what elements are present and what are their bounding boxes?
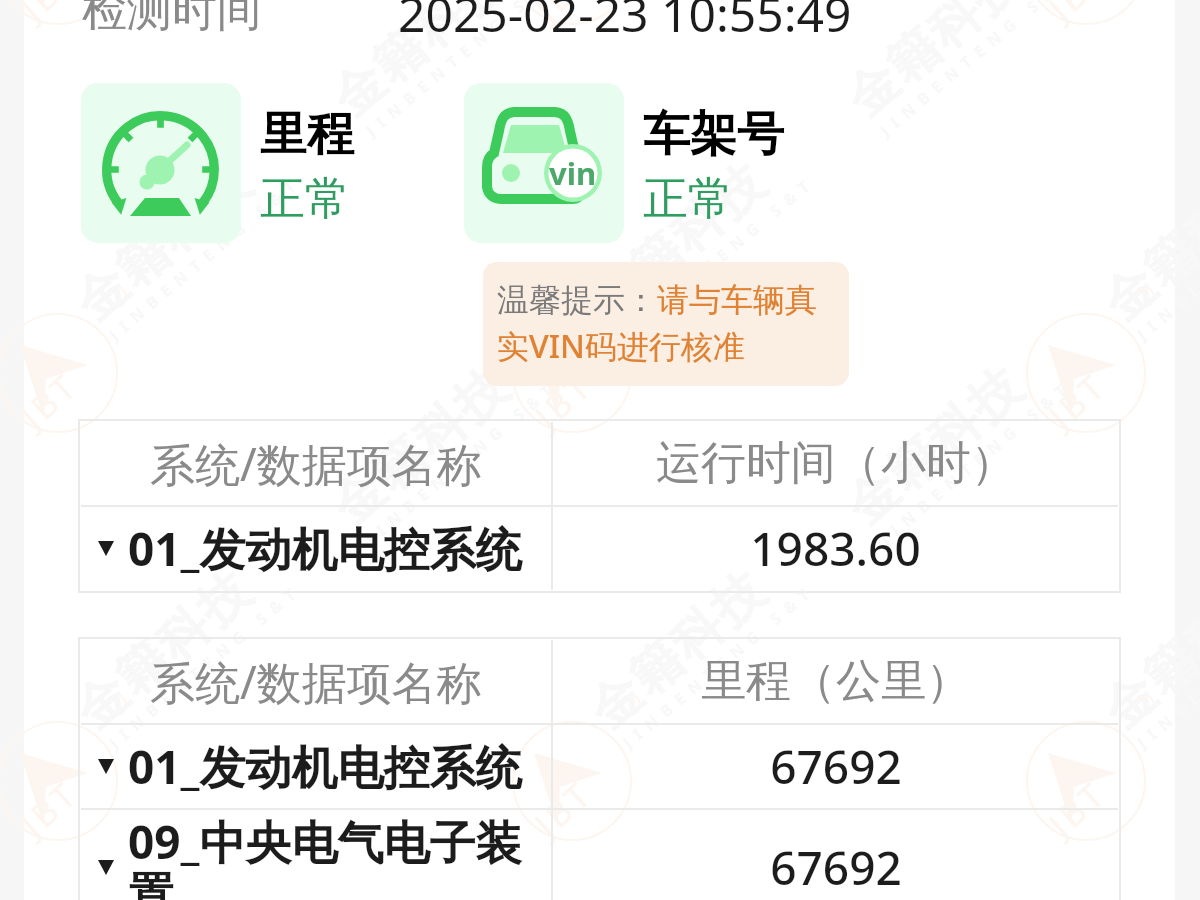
button[interactable]: 系统/数据项名称	[81, 422, 1118, 505]
staticText: 67692	[770, 836, 902, 899]
staticText: JINBENTENG S&T	[361, 374, 564, 549]
button[interactable]: 温馨提示：请与车辆真实VIN码进行核准	[483, 262, 849, 386]
staticText: JBT	[11, 0, 88, 30]
staticText: 金籍科技	[61, 151, 264, 335]
staticText: 金籍科技	[832, 355, 1035, 539]
staticText: JINBENTENG S&T	[361, 0, 564, 141]
staticText: 系统/数据项名称	[150, 433, 482, 494]
staticText: JINBENTENG S&T	[875, 374, 1078, 549]
button[interactable]: 里程	[81, 83, 241, 243]
staticText: 金籍科技	[575, 151, 778, 335]
staticText: JBT	[1039, 0, 1116, 30]
button[interactable]: 09_中央电气电子装置	[81, 810, 1118, 900]
staticText: 车架号	[643, 105, 784, 164]
staticText: 1983.60	[750, 517, 921, 580]
staticText: 系统/数据项名称	[150, 651, 482, 712]
staticText: JBT	[1039, 770, 1116, 846]
staticText: 运行时间（小时）	[656, 435, 1016, 492]
staticText: 温馨提示：请与车辆真实VIN码进行核准	[497, 280, 839, 368]
staticText: JINBENTENG S&T	[104, 170, 307, 345]
button[interactable]: 车架号	[464, 83, 624, 243]
staticText: 金籍科技	[575, 559, 778, 743]
staticText: 正常	[260, 171, 350, 228]
staticText: JINBENTENG S&T	[618, 170, 821, 345]
staticText: 09_中央电气电子装置	[128, 810, 548, 900]
staticText: JBT	[1039, 362, 1116, 438]
staticText: 里程（公里）	[701, 653, 971, 710]
staticText: JBT	[11, 770, 88, 846]
staticText: 里程	[260, 105, 354, 164]
staticText: 01_发动机电控系统	[128, 735, 548, 798]
staticText: JBT	[525, 0, 602, 30]
staticText: JBT	[11, 362, 88, 438]
staticText: JINBENTENG S&T	[1132, 170, 1200, 345]
staticText: vin	[549, 152, 597, 194]
staticText: 金籍科技	[1089, 559, 1200, 743]
staticText: 正常	[643, 171, 733, 228]
staticText: 01_发动机电控系统	[128, 517, 548, 580]
staticText: 金籍科技	[318, 0, 521, 131]
staticText: 67692	[770, 735, 902, 798]
staticText: 2025-02-23 10:55:49	[398, 0, 852, 46]
button[interactable]: 01_发动机电控系统	[81, 725, 1118, 808]
staticText: JINBENTENG S&T	[104, 578, 307, 753]
staticText: JINBENTENG S&T	[1132, 578, 1200, 753]
button[interactable]: 系统/数据项名称	[81, 640, 1118, 723]
staticText: 金籍科技	[832, 0, 1035, 131]
staticText: 金籍科技	[318, 355, 521, 539]
staticText: JBT	[525, 362, 602, 438]
button[interactable]: 01_发动机电控系统	[81, 507, 1118, 590]
staticText: 金籍科技	[1089, 151, 1200, 335]
staticText: JBT	[525, 770, 602, 846]
staticText: JINBENTENG S&T	[618, 578, 821, 753]
staticText: 检测时间	[82, 0, 262, 39]
staticText: 金籍科技	[61, 559, 264, 743]
